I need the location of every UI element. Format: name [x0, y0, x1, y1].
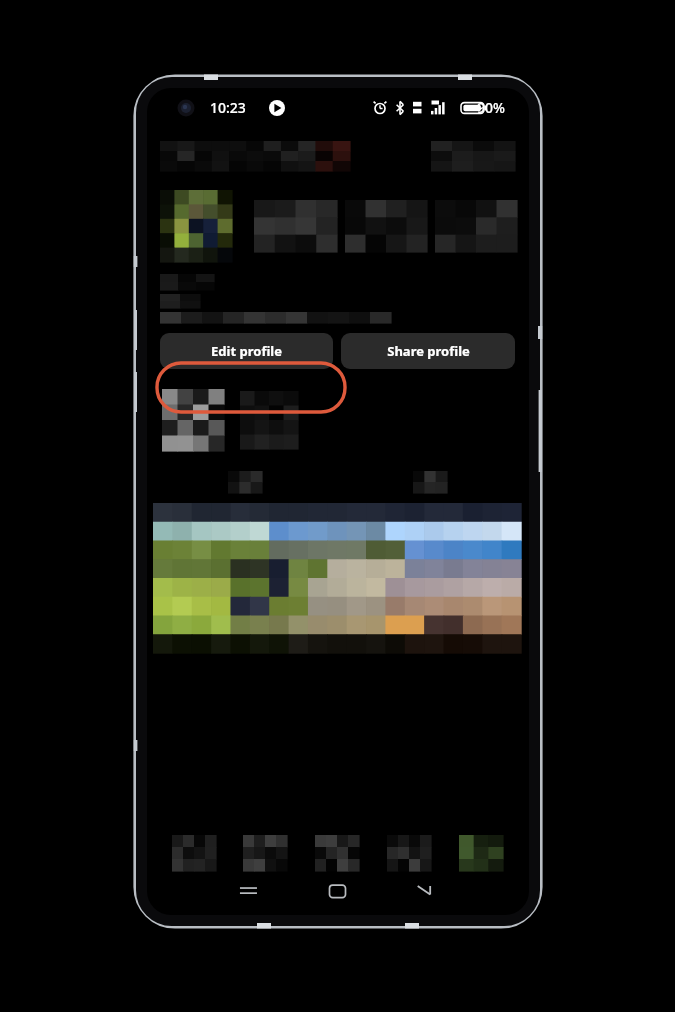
button[interactable]: Share profile — [341, 333, 515, 369]
button[interactable]: Edit profile — [160, 333, 333, 369]
button[interactable]: Profile photo — [160, 190, 232, 262]
button[interactable]: Search — [229, 833, 301, 873]
button[interactable]: Story highlight — [240, 391, 298, 449]
button[interactable]: Profile — [445, 833, 517, 873]
button[interactable]: Photo post — [153, 503, 521, 653]
button[interactable]: Toolbar actions — [431, 141, 515, 171]
button[interactable] — [254, 200, 337, 252]
staticText: 10:23 — [210, 98, 246, 117]
button[interactable]: Create — [301, 833, 373, 873]
button[interactable] — [160, 141, 350, 171]
staticText: 90% — [477, 98, 505, 117]
button[interactable]: Reels — [373, 833, 445, 873]
staticText: Share profile — [387, 342, 470, 360]
button[interactable]: Tab — [337, 469, 523, 495]
button[interactable]: Home — [158, 833, 229, 873]
button[interactable]: Story highlight — [162, 389, 224, 451]
button[interactable] — [435, 200, 517, 252]
button[interactable] — [345, 200, 427, 252]
staticText: Edit profile — [211, 342, 282, 360]
button[interactable]: Tab — [152, 469, 337, 495]
